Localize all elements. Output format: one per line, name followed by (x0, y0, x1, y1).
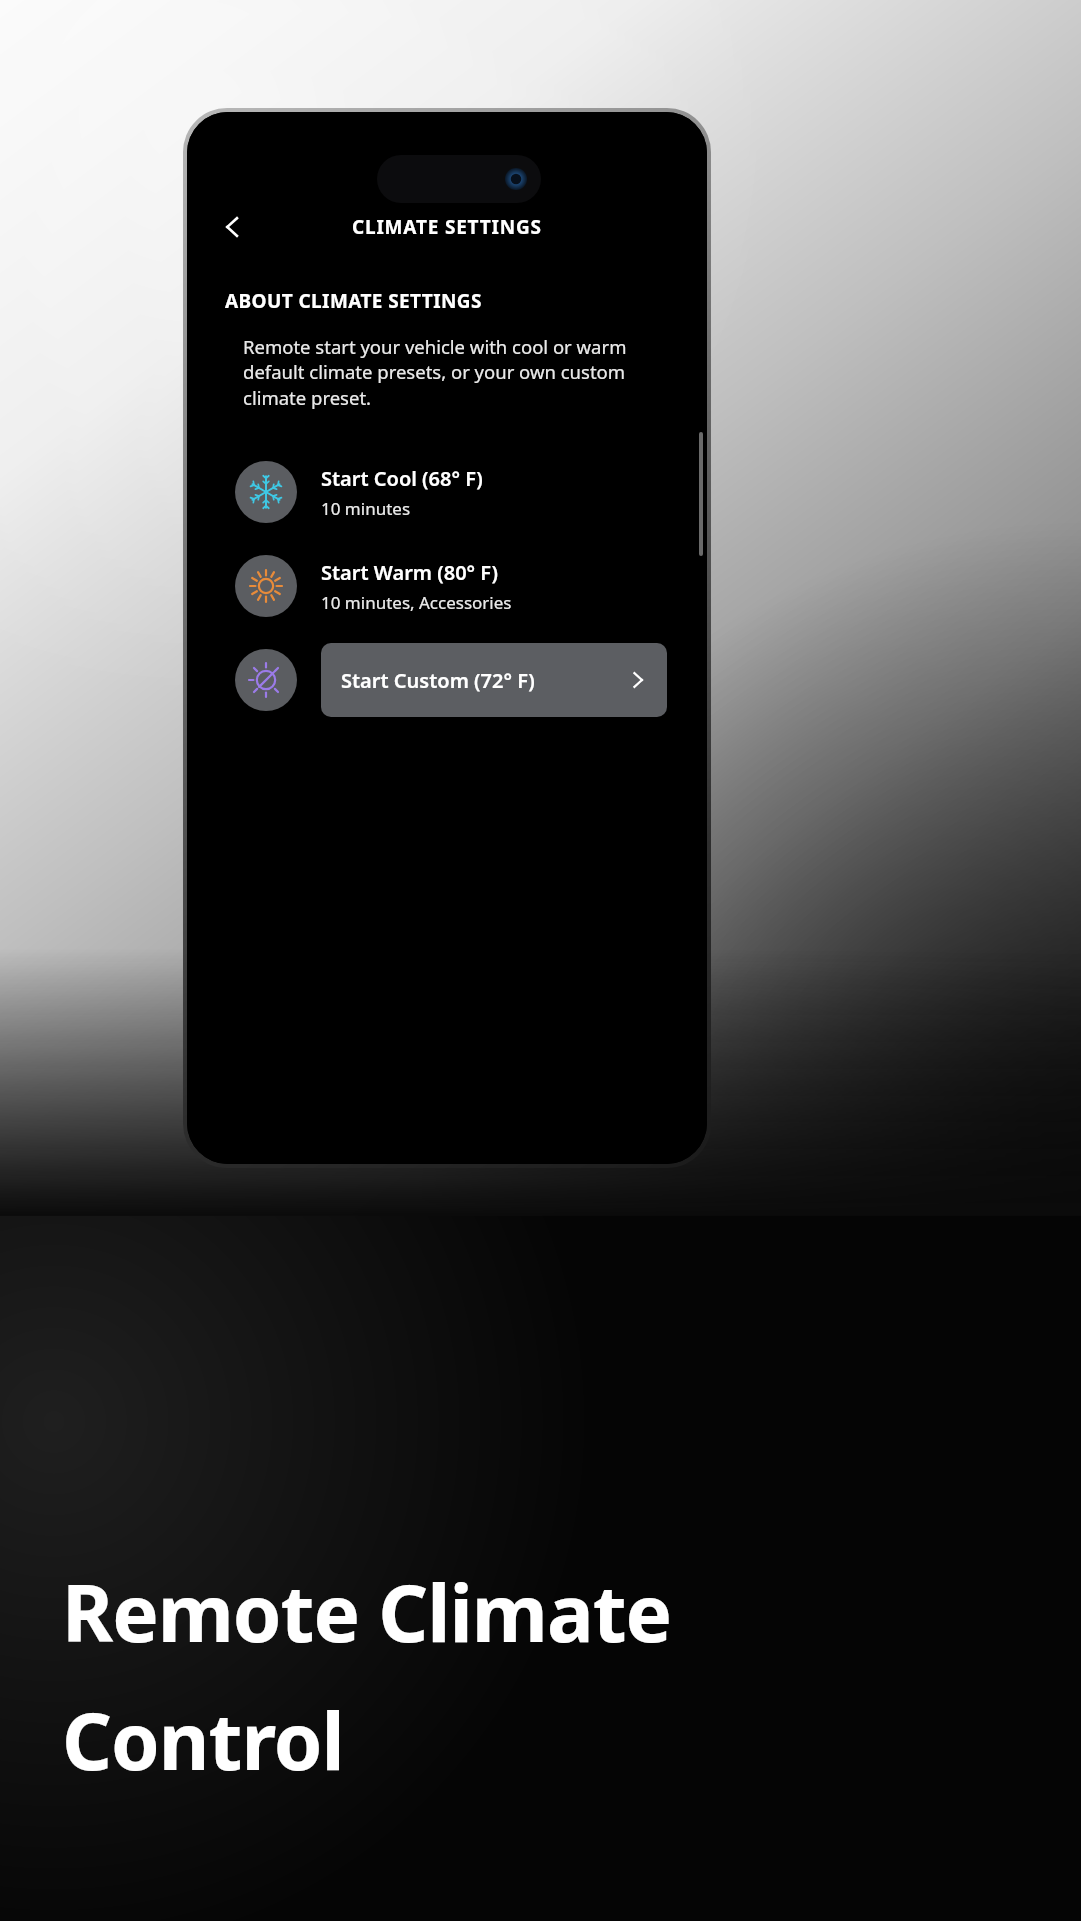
staticText: Start Cool (68° F) (321, 465, 483, 492)
staticText: 10 minutes, Accessories (321, 591, 512, 614)
staticText: Start Custom (72° F) (341, 667, 627, 694)
button[interactable]: Start Custom (72° F) (321, 643, 667, 717)
staticText: Control (62, 1687, 344, 1793)
staticText: 10 minutes (321, 497, 411, 520)
staticText: ABOUT CLIMATE SETTINGS (225, 288, 482, 314)
staticText: Remote start your vehicle with cool or w… (243, 334, 649, 411)
button[interactable]: Start Cool (68° F) (187, 455, 707, 529)
button[interactable]: Start Custom (72° F) (187, 643, 707, 717)
staticText: CLIMATE SETTINGS (352, 214, 542, 240)
button[interactable]: Back (209, 203, 257, 251)
button[interactable]: Start Warm (80° F) (187, 549, 707, 623)
staticText: Remote Climate (62, 1559, 672, 1665)
staticText: Start Warm (80° F) (321, 559, 498, 586)
